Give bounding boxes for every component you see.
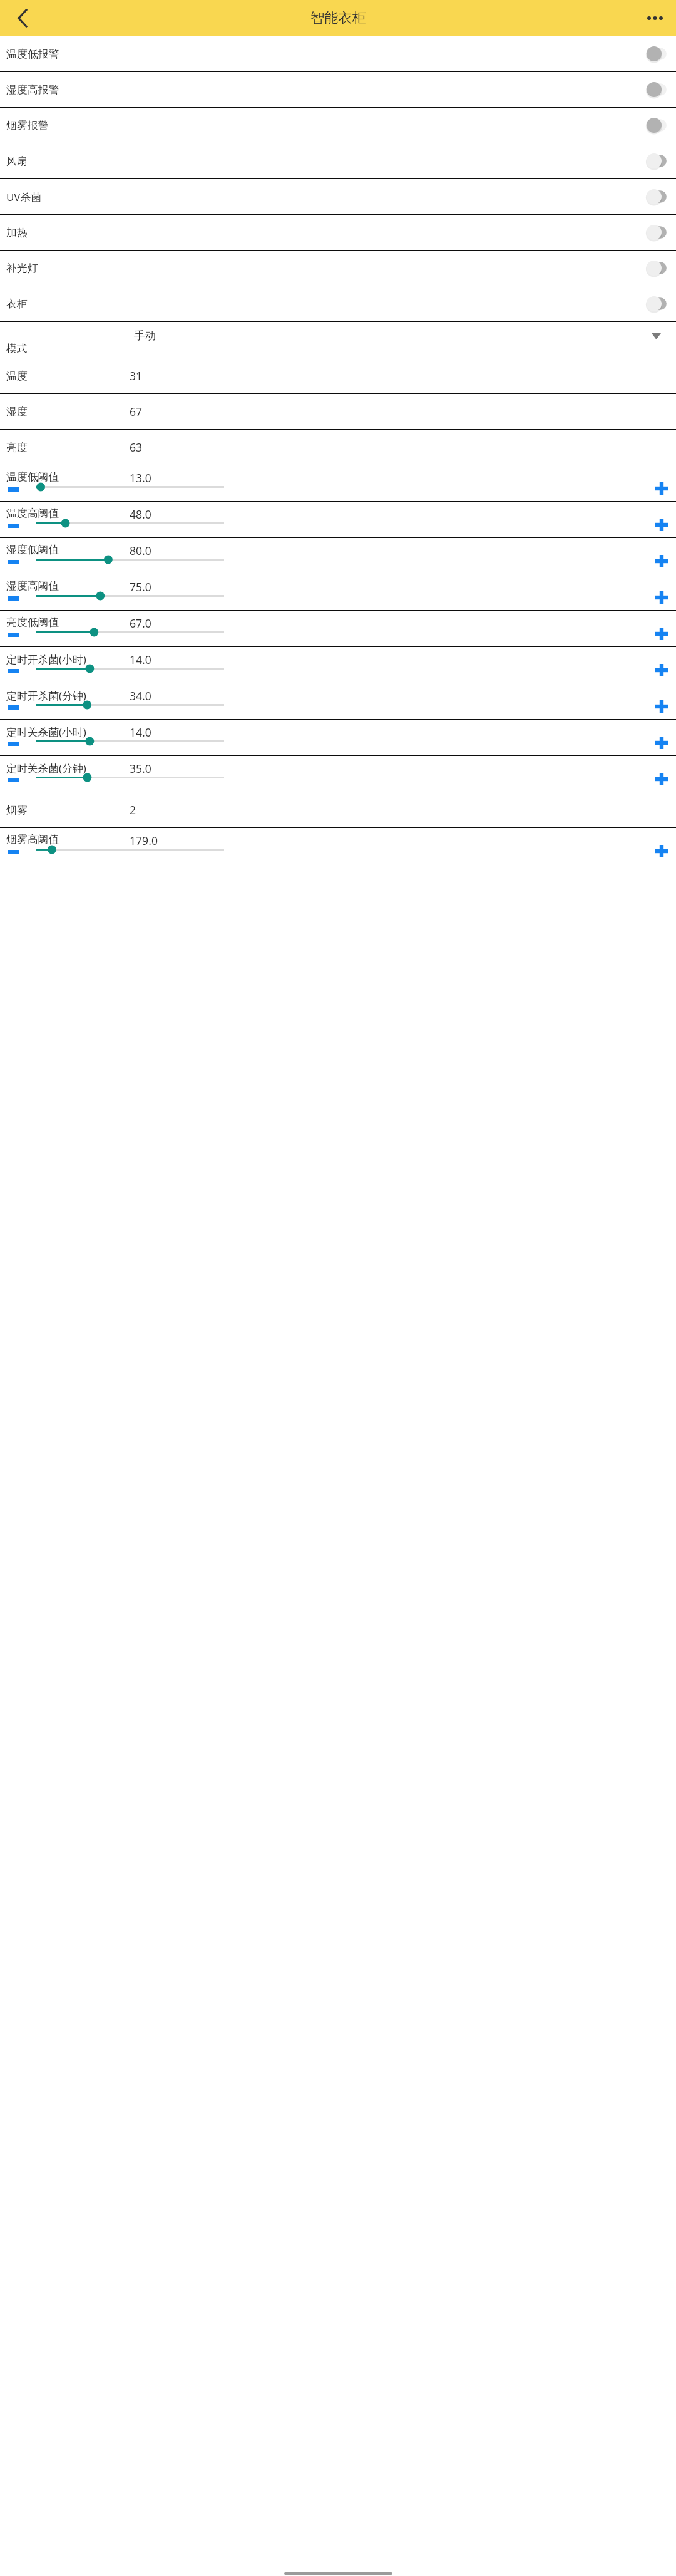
button[interactable]: 湿度 [0,394,676,429]
button[interactable]: Decrease [2,553,25,571]
staticText: 定时开杀菌(分钟) [6,688,86,703]
staticText: 34.0 [130,688,151,703]
staticText: 湿度低阈值 [6,543,59,556]
staticText: 湿度 [6,405,28,418]
staticText: 补光灯 [6,262,38,275]
button[interactable]: 湿度高报警 [0,72,676,107]
button[interactable]: 补光灯 [0,251,676,286]
staticText: 67 [130,404,143,419]
staticText: 智能衣柜 [310,9,366,27]
staticText: 48.0 [130,507,151,522]
button[interactable]: Decrease [2,517,25,534]
button[interactable]: Decrease [2,843,25,861]
staticText: 手动 [134,329,156,343]
staticText: 湿度高阈值 [6,579,59,592]
button[interactable]: Back [11,6,34,29]
staticText: 亮度低阈值 [6,616,59,629]
button[interactable]: 亮度 [0,430,676,465]
button[interactable]: Decrease [2,626,25,643]
button[interactable]: 衣柜 [0,286,676,321]
button[interactable]: Decrease [2,698,25,716]
staticText: 模式 [6,342,28,355]
button[interactable]: Increase [650,587,673,608]
staticText: 烟雾 [6,804,28,817]
staticText: 80.0 [130,543,151,558]
staticText: 14.0 [130,652,151,667]
button[interactable]: More options [643,6,667,29]
button[interactable]: Decrease [2,480,25,498]
staticText: 加热 [6,226,28,239]
staticText: 35.0 [130,761,151,776]
staticText: 烟雾高阈值 [6,833,59,846]
button[interactable]: Decrease [2,771,25,789]
button[interactable]: 加热 [0,215,676,250]
button[interactable]: UV杀菌 [0,179,676,214]
button[interactable]: 风扇 [0,143,676,178]
button[interactable]: Increase [650,478,673,499]
staticText: 13.0 [130,470,151,485]
staticText: 31 [130,368,143,383]
staticText: 75.0 [130,579,151,594]
button[interactable]: Increase [650,733,673,753]
button[interactable]: Increase [650,660,673,680]
staticText: 63 [130,440,143,455]
staticText: 亮度 [6,441,28,454]
staticText: 烟雾报警 [6,119,49,132]
staticText: 14.0 [130,725,151,740]
staticText: 179.0 [130,833,158,848]
staticText: 定时关杀菌(小时) [6,725,86,739]
button[interactable]: 模式 [0,322,676,358]
button[interactable]: Decrease [2,735,25,752]
staticText: 温度低阈值 [6,470,59,484]
staticText: UV杀菌 [6,190,42,204]
button[interactable]: 温度低报警 [0,36,676,71]
button[interactable]: Increase [650,696,673,716]
button[interactable]: Decrease [2,589,25,607]
button[interactable]: 烟雾报警 [0,108,676,143]
button[interactable]: Increase [650,551,673,571]
staticText: 67.0 [130,616,151,631]
staticText: 温度高阈值 [6,507,59,520]
button[interactable]: 温度 [0,358,676,393]
staticText: 温度 [6,370,28,383]
button[interactable]: Increase [650,841,673,861]
staticText: 温度低报警 [6,48,59,61]
staticText: 衣柜 [6,297,28,311]
staticText: 湿度高报警 [6,83,59,96]
button[interactable]: Increase [650,515,673,535]
staticText: 风扇 [6,155,28,168]
button[interactable]: 烟雾 [0,792,676,827]
staticText: 定时关杀菌(分钟) [6,761,86,775]
button[interactable]: Increase [650,769,673,789]
button[interactable]: Decrease [2,662,25,680]
staticText: 定时开杀菌(小时) [6,652,86,666]
button[interactable]: Increase [650,624,673,644]
staticText: 2 [130,802,136,817]
